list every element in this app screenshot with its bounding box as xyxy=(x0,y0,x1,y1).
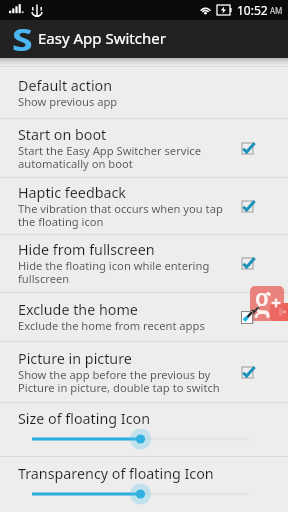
button[interactable]: Exclude the home xyxy=(0,293,288,341)
staticText: Transparency of floating Icon xyxy=(18,464,214,483)
staticText: Hide the floating icon while entering fu… xyxy=(18,258,210,286)
staticText: Show previous app xyxy=(18,94,118,109)
staticText: AM xyxy=(270,5,283,16)
staticText: Exclude the home from recent apps xyxy=(18,318,205,333)
staticText: g xyxy=(254,273,271,318)
staticText: S xyxy=(12,19,33,57)
button[interactable]: Picture in picture xyxy=(0,342,288,402)
button[interactable]: Start on boot xyxy=(0,119,288,177)
staticText: The vibration that occurs when you tap t… xyxy=(18,201,223,229)
staticText: Size of floating Icon xyxy=(18,409,150,428)
button[interactable]: Google Plus promo xyxy=(242,284,288,325)
button[interactable]: Haptic feedback xyxy=(0,178,288,234)
staticText: Easy App Switcher xyxy=(38,28,166,48)
staticText: Hide from fullscreen xyxy=(18,240,155,259)
staticText: 10:52 xyxy=(237,2,268,18)
staticText: Show the app before the previous by Pict… xyxy=(18,367,220,395)
staticText: Start on boot xyxy=(18,125,107,144)
staticText: Picture in picture xyxy=(18,349,132,368)
button[interactable]: Default action xyxy=(0,67,288,118)
staticText: Haptic feedback xyxy=(18,183,126,202)
staticText: Exclude the home xyxy=(18,300,138,319)
staticText: Default action xyxy=(18,76,113,95)
button[interactable]: Transparency of floating Icon xyxy=(0,457,288,512)
staticText: Start the Easy App Switcher service auto… xyxy=(18,143,202,171)
button[interactable]: Hide from fullscreen xyxy=(0,235,288,292)
button[interactable]: Size of floating Icon xyxy=(0,403,288,456)
